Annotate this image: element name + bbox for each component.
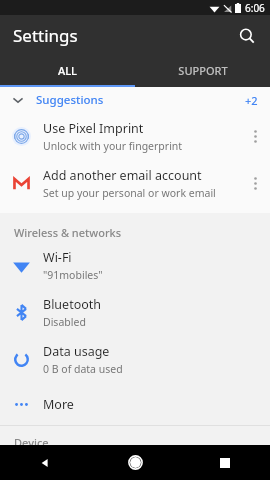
staticText: Use Pixel Imprint [43, 120, 144, 137]
button[interactable]: ALL [0, 56, 135, 85]
staticText: Device [14, 435, 49, 445]
staticText: Data usage [43, 343, 110, 360]
staticText: Unlock with your fingerprint [43, 139, 183, 153]
staticText: More [43, 396, 74, 413]
button[interactable]: SUPPORT [135, 56, 270, 85]
button[interactable]: More options [240, 160, 270, 207]
staticText: ALL [58, 63, 77, 78]
button[interactable]: More [0, 383, 270, 425]
staticText: Set up your personal or work email [43, 186, 216, 200]
button[interactable]: Search [230, 19, 264, 53]
staticText: Wireless & networks [14, 225, 122, 240]
button[interactable]: Use Pixel Imprint [0, 113, 270, 160]
staticText: "91mobiles" [43, 268, 103, 282]
button[interactable]: More options [240, 113, 270, 160]
staticText: 6:06 [245, 1, 265, 15]
staticText: Suggestions [36, 92, 104, 108]
button[interactable]: Add another email account [0, 160, 270, 207]
button[interactable]: Home [90, 445, 180, 480]
staticText: SUPPORT [178, 63, 228, 78]
button[interactable]: Suggestions [0, 87, 270, 113]
staticText: Wi-Fi [43, 249, 72, 266]
staticText: +2 [245, 93, 258, 108]
button[interactable]: Back [0, 445, 90, 480]
staticText: Bluetooth [43, 296, 102, 313]
button[interactable]: Recent apps [180, 445, 270, 480]
staticText: Add another email account [43, 167, 202, 184]
staticText: 0 B of data used [43, 362, 123, 376]
button[interactable]: Bluetooth [0, 289, 270, 336]
staticText: Disabled [43, 315, 86, 329]
button[interactable]: Data usage [0, 336, 270, 383]
staticText: Settings [13, 24, 78, 47]
button[interactable]: Wi-Fi [0, 242, 270, 289]
